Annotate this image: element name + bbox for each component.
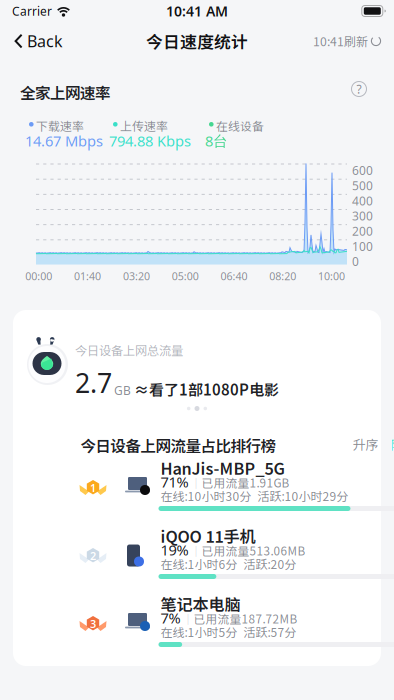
- staticText: 全家上网速率: [20, 81, 110, 103]
- staticText: 19%: [160, 540, 188, 559]
- button[interactable]: 升序: [348, 435, 382, 453]
- staticText: 7%: [160, 608, 180, 627]
- staticText: 400: [352, 193, 373, 209]
- staticText: 3: [90, 616, 96, 631]
- staticText: 10:41刷新: [313, 32, 368, 50]
- staticText: 已用流量1.91GB: [201, 474, 289, 491]
- staticText: 8台: [205, 131, 228, 150]
- staticText: 794.88 Kbps: [109, 131, 191, 150]
- button[interactable]: Back: [0, 22, 73, 60]
- staticText: 10:41 AM: [166, 1, 228, 21]
- staticText: 上传速率: [120, 117, 168, 134]
- staticText: ｜: [182, 611, 193, 627]
- staticText: 01:40: [74, 269, 101, 283]
- staticText: 08:20: [269, 269, 296, 283]
- staticText: 14.67 Mbps: [25, 131, 103, 150]
- staticText: 今日速度统计: [146, 29, 248, 53]
- staticText: 下载速率: [36, 117, 84, 134]
- staticText: 2: [90, 548, 96, 563]
- button[interactable]: 1: [65, 454, 328, 522]
- staticText: 600: [352, 162, 373, 178]
- staticText: 300: [352, 208, 373, 224]
- staticText: ｜: [190, 475, 201, 491]
- staticText: 10:00: [318, 269, 345, 283]
- staticText: 今日设备上网总流量: [75, 341, 183, 359]
- staticText: iQOO 11手机: [160, 524, 255, 547]
- staticText: Carrier: [12, 3, 52, 19]
- staticText: 在线:10小时30分 活跃:10小时29分: [160, 487, 348, 504]
- staticText: 已用流量513.06MB: [201, 542, 305, 559]
- staticText: 已用流量187.72MB: [193, 610, 297, 627]
- staticText: ?: [356, 81, 361, 97]
- staticText: 06:40: [220, 269, 247, 283]
- staticText: 03:20: [123, 269, 150, 283]
- staticText: ≈看了1部1080P电影: [134, 378, 279, 400]
- staticText: 笔记本电脑: [160, 592, 240, 615]
- staticText: 200: [352, 223, 373, 239]
- staticText: 升序: [352, 435, 378, 453]
- staticText: 500: [352, 178, 373, 194]
- staticText: ｜: [190, 543, 201, 559]
- staticText: HanJis-MBP_5G: [160, 456, 284, 479]
- staticText: 00:00: [25, 269, 52, 283]
- button[interactable]: 3: [65, 590, 328, 658]
- staticText: 71%: [160, 472, 188, 491]
- staticText: 1: [90, 480, 96, 495]
- staticText: 05:00: [172, 269, 199, 283]
- staticText: 今日设备上网流量占比排行榜: [80, 434, 275, 456]
- staticText: GB: [114, 382, 131, 398]
- button[interactable]: 降序: [386, 435, 394, 453]
- staticText: 降序: [390, 435, 394, 453]
- button[interactable]: 说明: [351, 81, 367, 97]
- button[interactable]: 2: [65, 522, 328, 590]
- staticText: 在线:1小时6分 活跃:20分: [160, 555, 296, 572]
- button[interactable]: 10:41刷新: [313, 22, 394, 60]
- staticText: 100: [352, 238, 373, 254]
- staticText: 0: [352, 253, 359, 269]
- staticText: 在线设备: [216, 117, 264, 134]
- staticText: Back: [27, 30, 63, 52]
- staticText: 2.7: [75, 365, 112, 400]
- staticText: 在线:1小时5分 活跃:57分: [160, 623, 296, 640]
